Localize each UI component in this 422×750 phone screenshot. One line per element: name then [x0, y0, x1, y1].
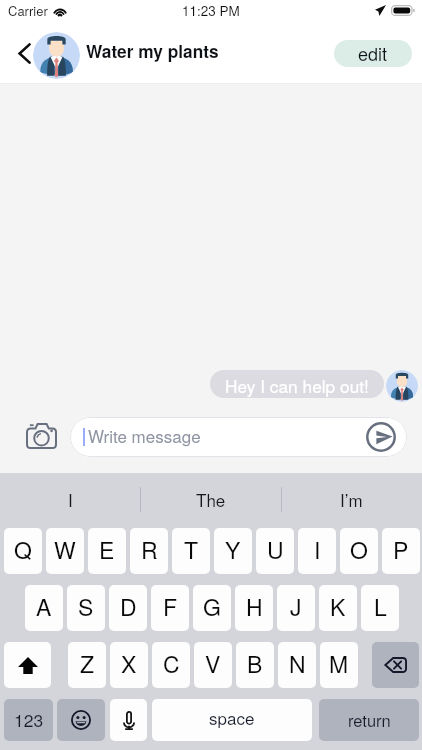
staticText: W [54, 533, 76, 566]
button[interactable]: V [194, 642, 232, 688]
button[interactable]: Backspace [372, 642, 419, 688]
staticText: The [196, 487, 226, 511]
staticText: R [141, 533, 158, 566]
staticText: B [247, 647, 263, 680]
button[interactable]: X [110, 642, 148, 688]
button[interactable]: Shift [4, 642, 51, 688]
button[interactable]: Z [68, 642, 106, 688]
staticText: I’m [340, 487, 363, 511]
staticText: Water my plants [86, 39, 219, 64]
button[interactable]: A [25, 585, 63, 631]
button[interactable]: U [256, 528, 294, 574]
button[interactable] [70, 417, 407, 457]
staticText: return [348, 708, 391, 732]
staticText: O [350, 533, 368, 566]
staticText: G [203, 590, 221, 623]
button[interactable]: P [382, 528, 420, 574]
staticText: 123 [14, 707, 44, 732]
staticText: Y [225, 533, 241, 566]
staticText: T [184, 533, 199, 566]
button[interactable]: S [67, 585, 105, 631]
button[interactable]: O [340, 528, 378, 574]
button[interactable]: E [88, 528, 126, 574]
button[interactable]: L [361, 585, 399, 631]
staticText: A [36, 590, 52, 623]
button[interactable]: C [152, 642, 190, 688]
button[interactable]: R [130, 528, 168, 574]
button[interactable]: edit [334, 40, 412, 67]
staticText: M [329, 647, 349, 680]
staticText: space [209, 705, 255, 729]
button[interactable]: Dictate [110, 699, 147, 741]
button[interactable]: F [151, 585, 189, 631]
button[interactable]: B [236, 642, 274, 688]
staticText: K [330, 590, 346, 623]
button[interactable]: J [277, 585, 315, 631]
button[interactable]: N [278, 642, 316, 688]
staticText: D [120, 590, 137, 623]
staticText: Write message [88, 423, 201, 447]
staticText: S [78, 590, 94, 623]
button[interactable]: H [235, 585, 273, 631]
button[interactable]: I’m [281, 473, 422, 525]
button[interactable]: space [152, 699, 312, 741]
staticText: F [163, 590, 178, 623]
button[interactable]: Camera [26, 423, 57, 449]
button[interactable]: Y [214, 528, 252, 574]
staticText: E [99, 533, 115, 566]
button[interactable]: Q [4, 528, 42, 574]
staticText: C [163, 647, 180, 680]
staticText: Hey I can help out! [225, 373, 369, 398]
button[interactable]: G [193, 585, 231, 631]
staticText: Z [80, 647, 95, 680]
staticText: Carrier [8, 1, 48, 20]
button[interactable]: I [298, 528, 336, 574]
button[interactable]: K [319, 585, 357, 631]
button[interactable]: Back [12, 41, 36, 65]
staticText: P [393, 533, 409, 566]
button[interactable]: 123 [4, 699, 53, 741]
staticText: U [267, 533, 284, 566]
staticText: X [121, 647, 137, 680]
button[interactable]: The [140, 473, 281, 525]
staticText: J [290, 590, 302, 623]
staticText: edit [358, 40, 388, 66]
staticText: V [205, 647, 221, 680]
button[interactable]: return [319, 699, 419, 741]
button[interactable]: Send [366, 422, 396, 452]
staticText: I [68, 487, 73, 511]
button[interactable]: W [46, 528, 84, 574]
button[interactable]: I [0, 473, 140, 525]
button[interactable]: Hey I can help out! [210, 370, 384, 398]
button[interactable]: T [172, 528, 210, 574]
staticText: L [374, 590, 387, 623]
button[interactable]: Emoji [57, 699, 105, 741]
staticText: H [246, 590, 263, 623]
staticText: I [314, 533, 321, 566]
staticText: N [289, 647, 306, 680]
button[interactable]: M [320, 642, 358, 688]
staticText: 11:23 PM [182, 1, 240, 20]
staticText: Q [14, 533, 32, 566]
button[interactable]: D [109, 585, 147, 631]
